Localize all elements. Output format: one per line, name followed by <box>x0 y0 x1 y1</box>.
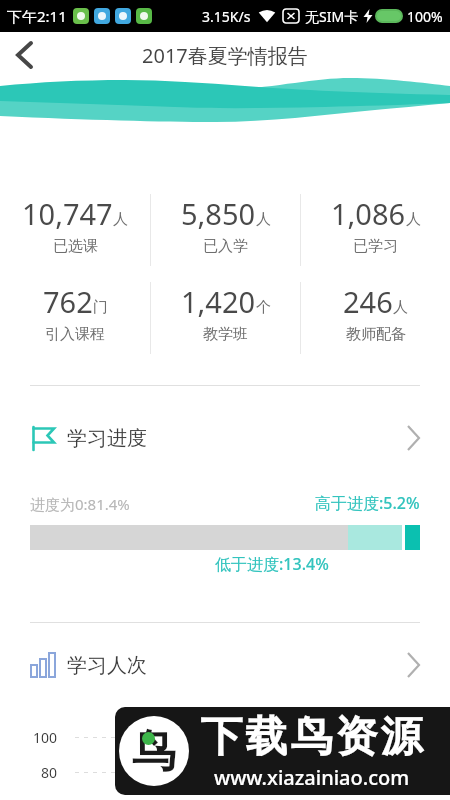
staticText: 高于进度:5.2% <box>315 492 420 514</box>
staticText: 门 <box>93 298 108 317</box>
staticText: 个 <box>256 298 271 317</box>
staticText: 鸟 <box>132 724 176 779</box>
button[interactable]: 鸟 <box>115 707 450 795</box>
staticText: 低于进度:13.4% <box>215 553 329 575</box>
staticText: 10,747 <box>22 194 113 233</box>
staticText: 3.15K/s <box>202 7 251 26</box>
staticText: 5,850 <box>181 194 256 233</box>
staticText: 2017春夏学情报告 <box>142 42 308 69</box>
staticText: 1,420 <box>181 282 256 321</box>
staticText: 已入学 <box>203 237 248 256</box>
button[interactable] <box>14 41 34 69</box>
staticText: 引入课程 <box>45 325 105 344</box>
staticText: 学习人次 <box>67 653 147 678</box>
staticText: 学习进度 <box>67 426 147 451</box>
staticText: 下载鸟资源 <box>199 711 424 764</box>
button[interactable]: 学习人次 <box>30 647 420 683</box>
staticText: 1,086 <box>331 194 406 233</box>
staticText: 教师配备 <box>346 325 406 344</box>
staticText: 已选课 <box>53 237 98 256</box>
staticText: 进度为0:81.4% <box>30 494 130 514</box>
staticText: 100% <box>407 7 443 26</box>
staticText: 已学习 <box>353 237 398 256</box>
staticText: 246 <box>343 282 393 321</box>
staticText: 762 <box>43 282 93 321</box>
staticText: 100 <box>33 728 58 747</box>
staticText: 人 <box>393 298 408 317</box>
staticText: www.xiazainiao.com <box>214 764 410 791</box>
staticText: 下午2:11 <box>7 6 67 26</box>
staticText: 无SIM卡 <box>305 7 359 26</box>
button[interactable]: 学习进度 <box>30 420 420 456</box>
staticText: 人 <box>113 210 128 229</box>
staticText: 教学班 <box>203 325 248 344</box>
staticText: 人 <box>406 210 421 229</box>
staticText: 人 <box>256 210 271 229</box>
staticText: 80 <box>41 763 58 782</box>
